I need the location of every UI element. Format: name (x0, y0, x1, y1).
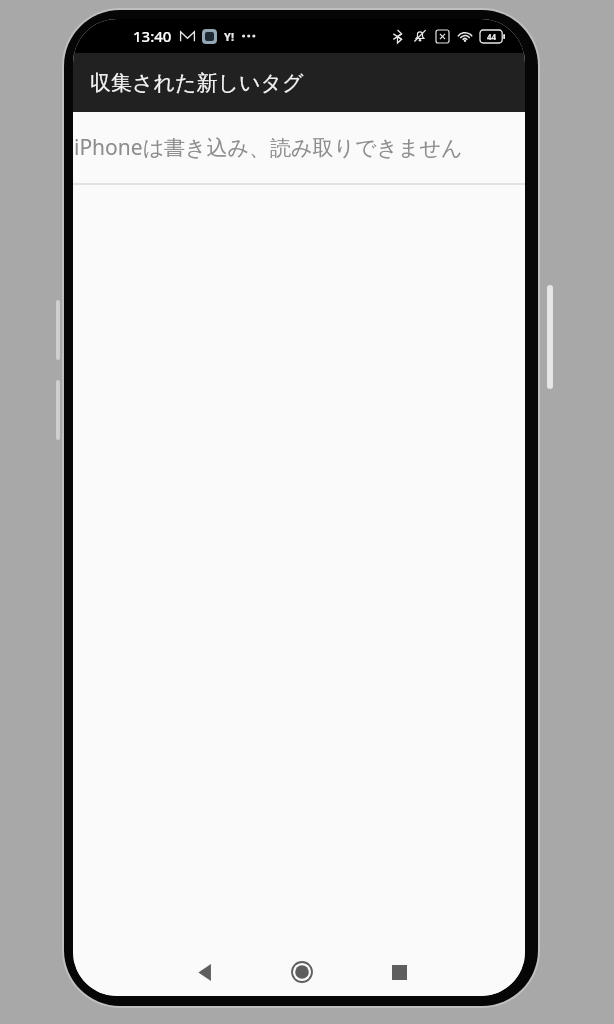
button[interactable]: Recent apps (379, 952, 419, 992)
button[interactable]: Home (280, 950, 324, 994)
staticText: 収集された新しいタグ (90, 70, 304, 96)
button[interactable]: Back (185, 952, 225, 992)
staticText: Y! (224, 29, 234, 44)
staticText: 44 (487, 31, 497, 42)
staticText: 13:40 (133, 26, 172, 46)
staticText: iPhoneは書き込み、読み取りできません (74, 133, 463, 162)
button[interactable]: iPhoneは書き込み、読み取りできません (73, 112, 525, 183)
